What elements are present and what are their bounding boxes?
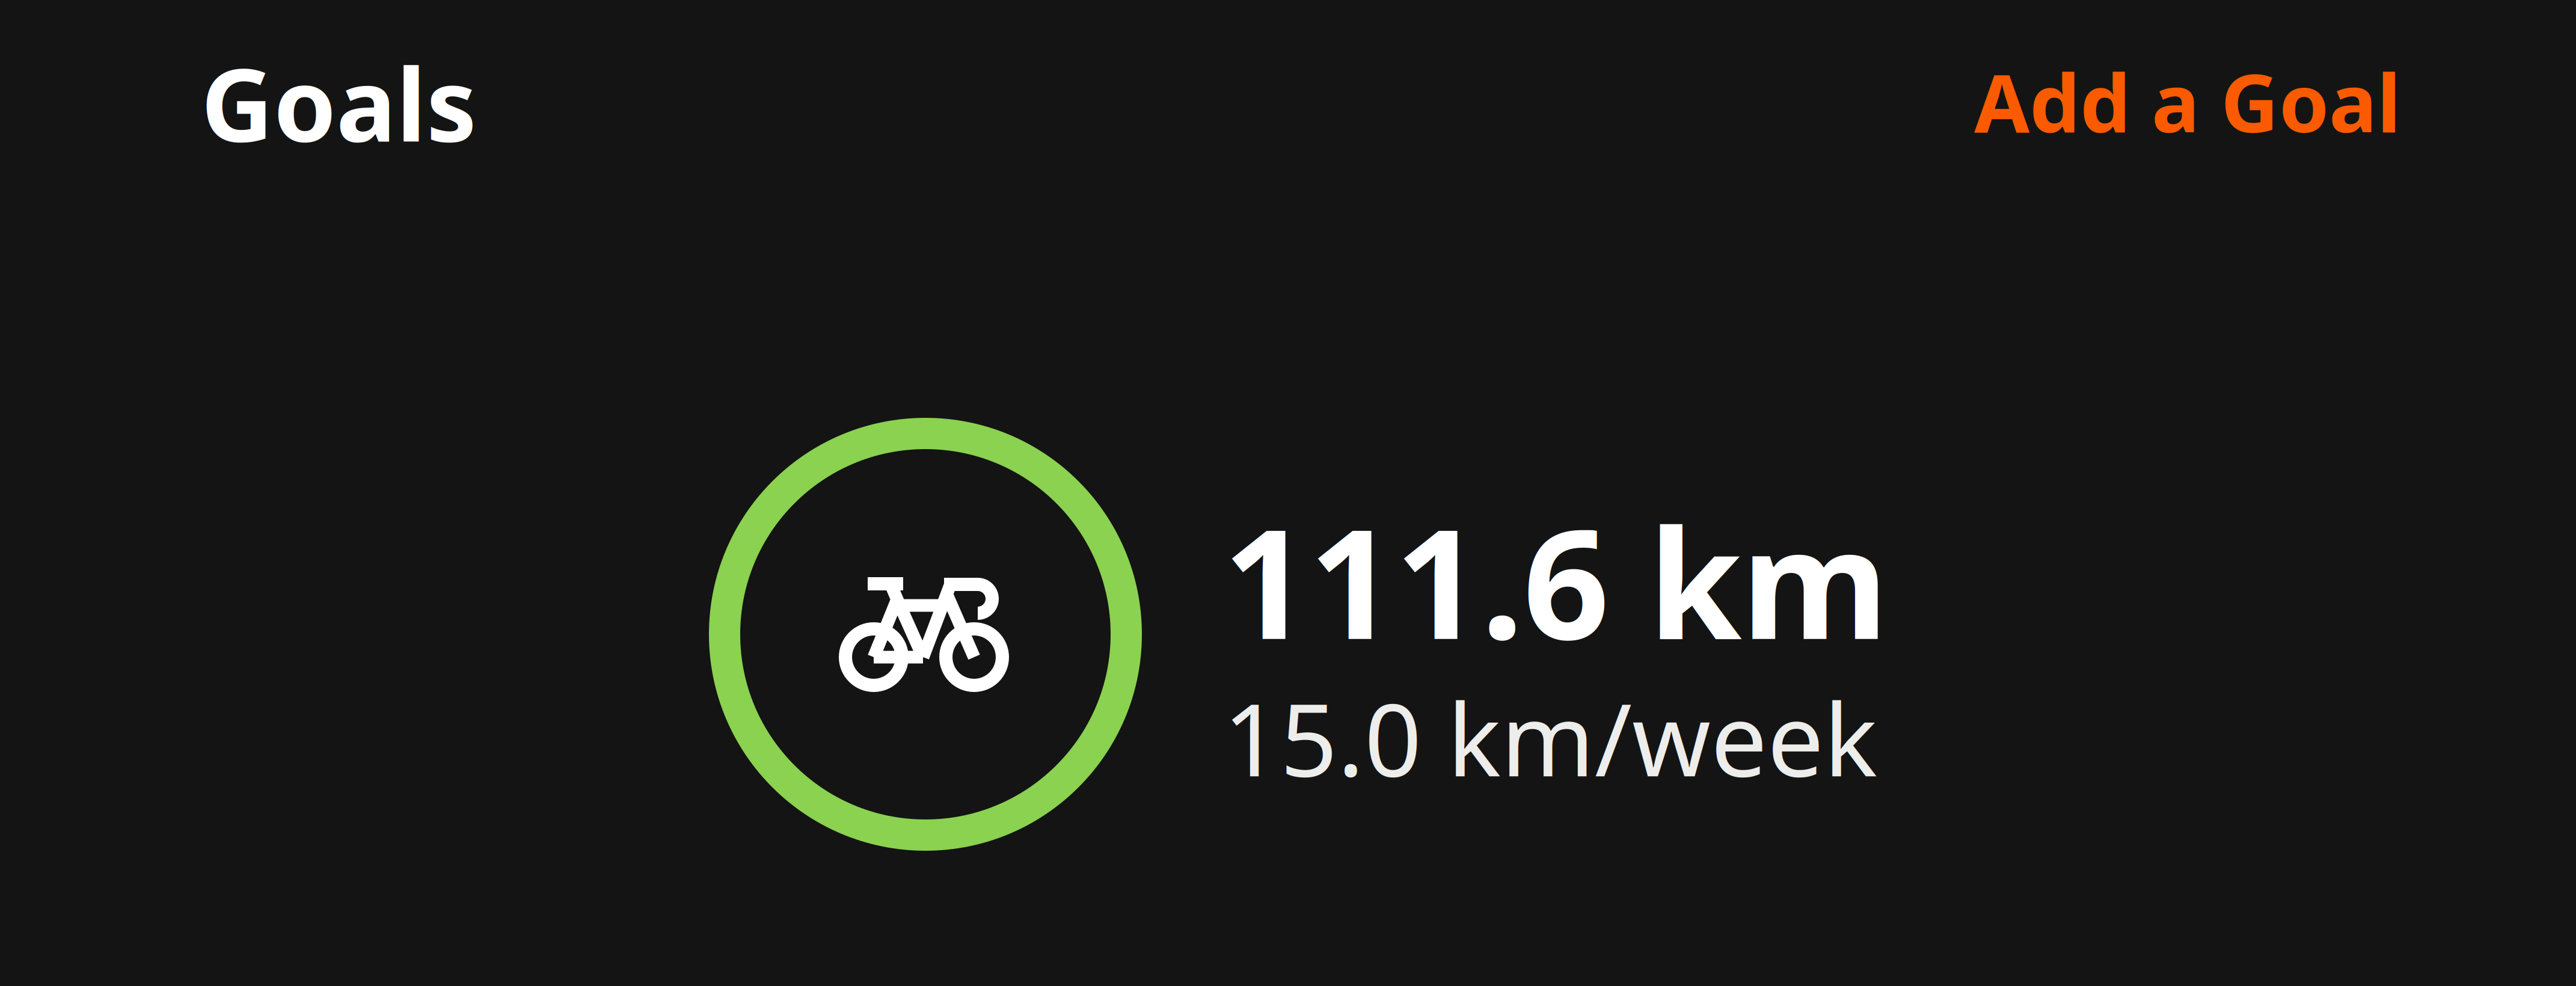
button[interactable]: 111.6 km xyxy=(0,0,2576,986)
staticText: Add a Goal xyxy=(1974,48,2401,155)
staticText: Goals xyxy=(201,36,477,169)
button[interactable]: Add a Goal xyxy=(1950,30,2425,173)
staticText: 15.0 km/week xyxy=(1223,671,1877,804)
staticText: 111.6 km xyxy=(1223,480,1888,681)
